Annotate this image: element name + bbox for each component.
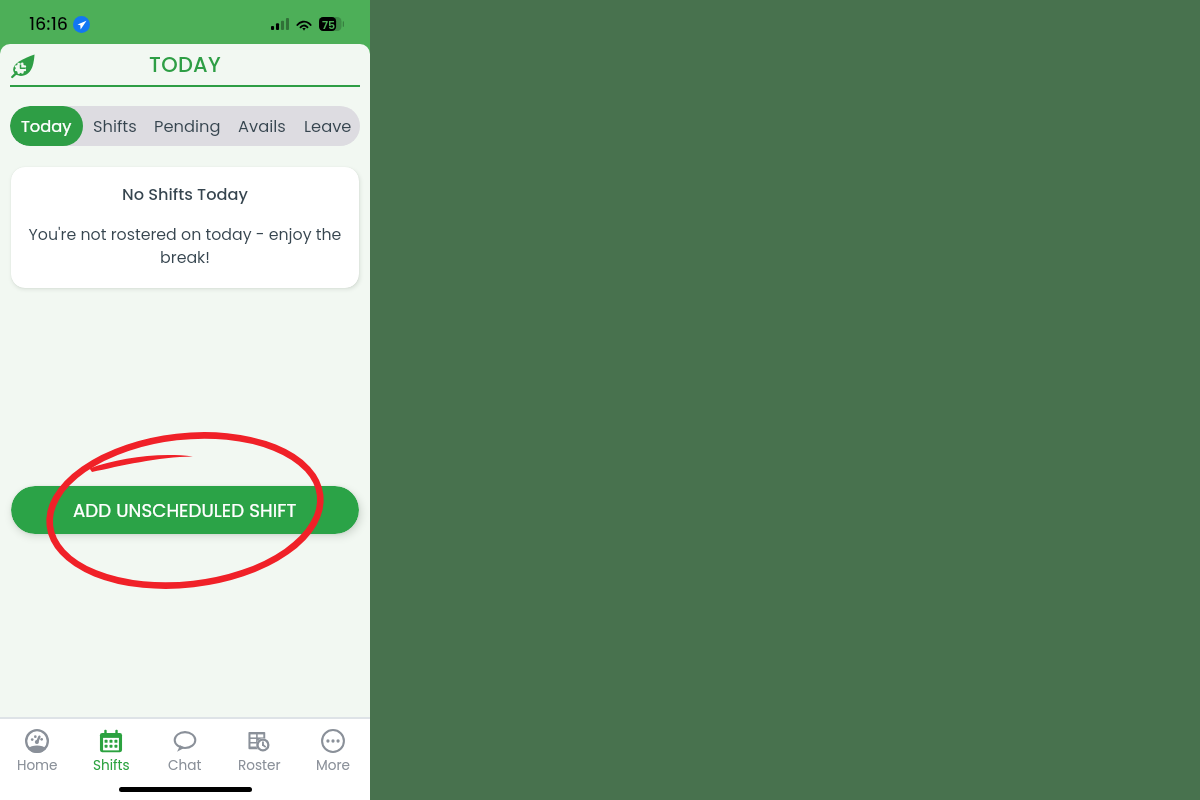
button[interactable]: Avails bbox=[228, 106, 295, 146]
staticText: Home bbox=[17, 756, 58, 775]
button[interactable]: Roster bbox=[222, 719, 296, 781]
button[interactable]: Home bbox=[0, 719, 74, 781]
button[interactable]: No Shifts Today bbox=[11, 167, 359, 288]
staticText: Leave bbox=[304, 115, 352, 138]
staticText: Chat bbox=[168, 756, 202, 775]
button[interactable]: Today bbox=[10, 106, 83, 146]
button[interactable]: Leave bbox=[295, 106, 360, 146]
button[interactable]: App menu bbox=[8, 50, 38, 80]
staticText: Avails bbox=[238, 115, 286, 138]
staticText: ADD UNSCHEDULED SHIFT bbox=[73, 498, 297, 523]
button[interactable]: ADD UNSCHEDULED SHIFT bbox=[11, 486, 359, 534]
staticText: Roster bbox=[238, 756, 281, 775]
staticText: 75 bbox=[322, 17, 336, 31]
button[interactable]: Pending bbox=[146, 106, 228, 146]
staticText: Shifts bbox=[93, 756, 130, 775]
staticText: Pending bbox=[154, 115, 221, 138]
staticText: TODAY bbox=[149, 50, 222, 79]
staticText: You're not rostered on today - enjoy the… bbox=[21, 223, 349, 268]
button[interactable]: Shifts bbox=[74, 719, 148, 781]
staticText: Shifts bbox=[93, 115, 137, 138]
button[interactable]: More bbox=[296, 719, 370, 781]
staticText: No Shifts Today bbox=[122, 183, 248, 206]
button[interactable]: Chat bbox=[148, 719, 222, 781]
button[interactable]: Shifts bbox=[83, 106, 146, 146]
staticText: More bbox=[316, 756, 350, 775]
staticText: Today bbox=[21, 115, 72, 138]
staticText: 16:16 bbox=[29, 12, 69, 37]
